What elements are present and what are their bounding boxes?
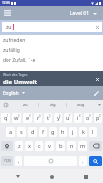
button[interactable]: Edit xyxy=(91,88,101,98)
button[interactable]: Voice input xyxy=(0,100,11,110)
button[interactable]: h xyxy=(59,127,67,137)
button[interactable]: s xyxy=(17,127,26,137)
button[interactable]: r xyxy=(34,113,42,123)
button[interactable]: p xyxy=(94,113,102,123)
staticText: 5 xyxy=(49,114,51,118)
staticText: z xyxy=(18,142,21,150)
staticText: h xyxy=(61,128,65,136)
staticText: u xyxy=(66,114,70,122)
button[interactable]: t xyxy=(44,113,52,123)
button[interactable]: Level 61 xyxy=(70,10,97,17)
staticText: v xyxy=(48,142,51,150)
staticText: 9 xyxy=(89,114,91,118)
button[interactable]: Shift xyxy=(1,141,13,151)
staticText: Wort des Tages xyxy=(3,72,28,77)
button[interactable]: zufällig xyxy=(0,45,103,55)
staticText: 0 xyxy=(99,114,101,118)
staticText: 6 xyxy=(59,114,61,118)
staticText: k xyxy=(82,128,85,136)
staticText: zufällig xyxy=(3,47,20,54)
button[interactable]: zig xyxy=(39,100,67,110)
staticText: d xyxy=(31,128,35,136)
staticText: zu xyxy=(6,24,12,31)
staticText: p xyxy=(96,114,100,122)
button[interactable]: Back xyxy=(12,171,23,182)
button[interactable]: m xyxy=(78,141,87,151)
staticText: j xyxy=(72,128,74,136)
staticText: 2 xyxy=(18,114,20,118)
button[interactable]: Recent apps xyxy=(80,171,91,182)
staticText: ?123 xyxy=(4,159,11,163)
staticText: die Umwelt xyxy=(3,78,38,86)
button[interactable]: c xyxy=(35,141,43,151)
staticText: 1 xyxy=(7,114,9,118)
staticText: . xyxy=(82,157,84,165)
staticText: Level 61 xyxy=(70,10,90,17)
button[interactable]: w xyxy=(12,113,21,123)
button[interactable]: y xyxy=(54,113,62,123)
button[interactable]: b xyxy=(56,141,65,151)
button[interactable]: o xyxy=(84,113,92,123)
button[interactable]: Home xyxy=(46,171,57,182)
button[interactable]: u xyxy=(64,113,72,123)
staticText: 4 xyxy=(39,114,41,118)
button[interactable]: . xyxy=(79,156,87,166)
staticText: q xyxy=(4,114,8,122)
button[interactable]: Search xyxy=(89,156,102,166)
button[interactable]: zu xyxy=(11,100,39,110)
staticText: n xyxy=(70,142,74,150)
staticText: zug xyxy=(77,102,85,108)
staticText: der Zufall, ¨-e xyxy=(3,57,36,64)
staticText: w xyxy=(14,114,19,122)
button[interactable]: zufrieden xyxy=(0,35,103,45)
staticText: b xyxy=(59,142,63,150)
button[interactable]: Backspace xyxy=(89,141,102,151)
button[interactable]: zug xyxy=(67,100,95,110)
button[interactable]: i xyxy=(74,113,82,123)
button[interactable]: a xyxy=(6,127,15,137)
button[interactable]: , xyxy=(15,156,22,166)
button[interactable]: f xyxy=(39,127,47,137)
button[interactable]: Dismiss word of the day xyxy=(93,75,101,83)
staticText: e xyxy=(26,114,30,122)
button[interactable]: d xyxy=(28,127,37,137)
staticText: zufrieden xyxy=(3,37,26,44)
staticText: , xyxy=(18,157,20,165)
staticText: a xyxy=(9,128,13,136)
button[interactable]: Wort des Tages xyxy=(0,71,103,87)
staticText: 7 xyxy=(69,114,71,118)
staticText: 12:55 xyxy=(2,1,11,5)
staticText: g xyxy=(51,128,55,136)
staticText: zu xyxy=(23,102,28,108)
button[interactable]: x xyxy=(25,141,33,151)
button[interactable]: v xyxy=(45,141,54,151)
staticText: x xyxy=(28,142,31,150)
staticText: y xyxy=(57,114,60,122)
button[interactable]: zu xyxy=(2,22,102,32)
button[interactable]: Space xyxy=(24,156,77,166)
staticText: 8 xyxy=(79,114,81,118)
button[interactable]: l xyxy=(89,127,97,137)
button[interactable]: k xyxy=(79,127,87,137)
button[interactable]: j xyxy=(69,127,77,137)
button[interactable]: g xyxy=(49,127,57,137)
button[interactable]: Clear search xyxy=(93,23,101,31)
staticText: l xyxy=(92,128,94,136)
button[interactable]: q xyxy=(1,113,10,123)
button[interactable]: Open navigation menu xyxy=(0,6,14,20)
staticText: f xyxy=(42,128,44,136)
staticText: s xyxy=(20,128,23,136)
staticText: zig xyxy=(50,102,56,108)
button[interactable]: More suggestions xyxy=(95,100,103,110)
staticText: i xyxy=(77,114,79,122)
button[interactable]: English xyxy=(3,90,25,96)
button[interactable]: der Zufall, ¨-e xyxy=(0,55,103,65)
staticText: English xyxy=(3,90,19,96)
staticText: 3 xyxy=(29,114,31,118)
button[interactable]: n xyxy=(67,141,76,151)
button[interactable]: e xyxy=(23,113,32,123)
staticText: c xyxy=(38,142,41,150)
staticText: r xyxy=(37,114,40,122)
button[interactable]: z xyxy=(15,141,23,151)
button[interactable]: ?123 xyxy=(1,156,13,166)
